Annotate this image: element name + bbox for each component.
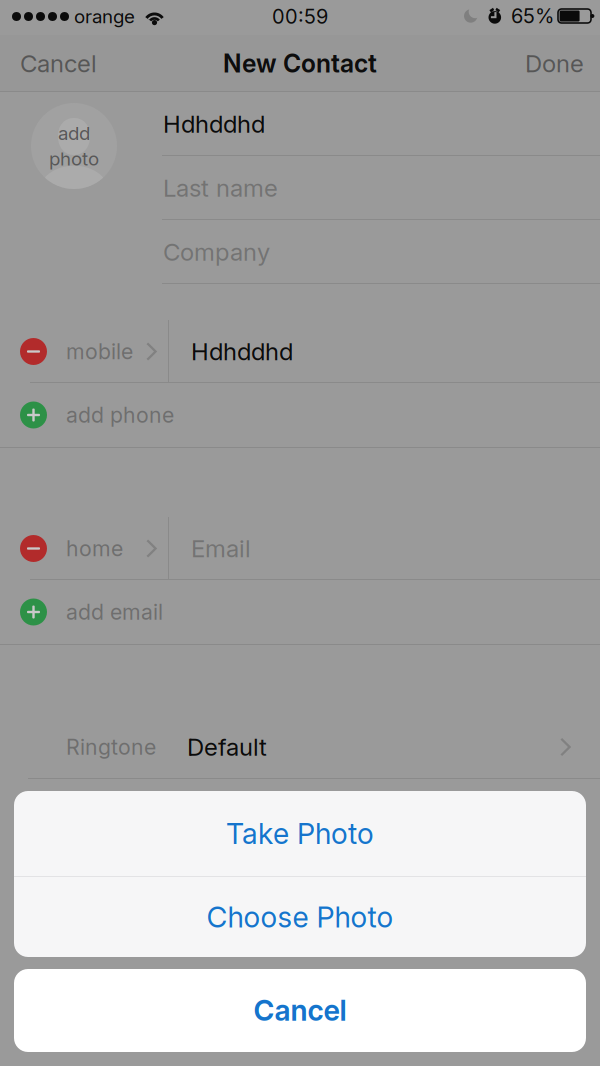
button[interactable]: Ringtone — [0, 715, 600, 779]
staticText: photo — [49, 147, 99, 170]
staticText: Last name — [163, 173, 278, 202]
button[interactable]: Last name — [162, 156, 600, 220]
button[interactable]: mobile — [0, 320, 600, 383]
staticText: add email — [66, 599, 163, 625]
button[interactable]: add phone — [0, 383, 600, 447]
staticText: Hdhddhd — [163, 109, 265, 138]
button[interactable]: Choose Photo — [14, 877, 586, 957]
button[interactable]: Cancel — [14, 969, 586, 1052]
button[interactable]: Add photo — [0, 92, 162, 284]
button[interactable]: Cancel — [0, 35, 117, 92]
button[interactable]: Take Photo — [14, 791, 586, 876]
staticText: Email — [191, 534, 251, 563]
staticText: 65% — [511, 4, 554, 28]
staticText: New Contact — [223, 49, 377, 78]
staticText: Choose Photo — [206, 900, 393, 934]
staticText: Hdhddhd — [191, 337, 293, 366]
staticText: add — [58, 122, 90, 144]
staticText: Done — [525, 49, 584, 78]
button[interactable]: home — [0, 517, 600, 580]
staticText: Default — [187, 732, 267, 761]
staticText: Ringtone — [66, 734, 156, 760]
staticText: mobile — [66, 339, 133, 364]
button[interactable]: Hdhddhd — [162, 92, 600, 156]
staticText: Cancel — [253, 993, 346, 1028]
button[interactable]: Company — [162, 220, 600, 284]
staticText: Company — [163, 237, 270, 266]
button[interactable]: add email — [0, 580, 600, 644]
staticText: add phone — [66, 402, 174, 428]
staticText: Take Photo — [226, 816, 374, 851]
staticText: 00:59 — [272, 4, 328, 29]
button[interactable]: Done — [509, 35, 600, 92]
staticText: Cancel — [20, 49, 97, 78]
staticText: home — [66, 536, 123, 561]
staticText: orange — [74, 5, 135, 28]
